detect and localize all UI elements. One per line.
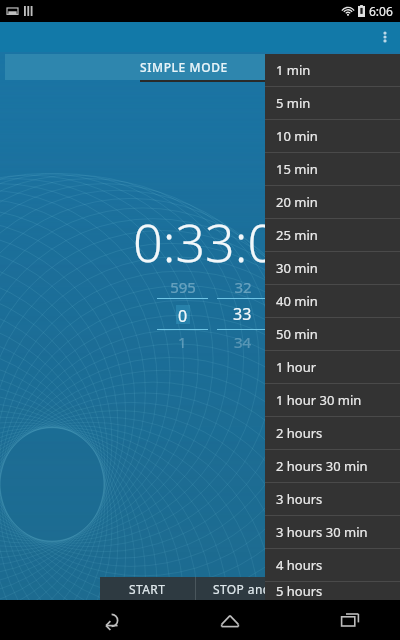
button[interactable]: Recent apps xyxy=(320,600,380,640)
button[interactable]: More options xyxy=(370,22,400,52)
staticText: 0:33:00 xyxy=(133,206,307,277)
button[interactable]: 2 hours 30 min xyxy=(265,450,400,482)
staticText: 1 xyxy=(178,332,187,352)
staticText: 32 xyxy=(234,277,252,297)
staticText: 1 min xyxy=(276,61,311,79)
button[interactable]: 20 min xyxy=(265,186,400,218)
staticText: 6:06 xyxy=(369,3,393,19)
staticText: STOP and R xyxy=(213,581,282,597)
staticText: 2 hours 30 min xyxy=(276,457,368,475)
button[interactable]: 5 hours xyxy=(265,582,400,600)
button[interactable]: SIMPLE MODE xyxy=(5,54,266,80)
button[interactable]: 5 min xyxy=(265,87,400,119)
button[interactable]: 25 min xyxy=(265,219,400,251)
staticText: 15 min xyxy=(276,160,318,178)
staticText: 5 hours xyxy=(276,582,323,600)
staticText: 10 min xyxy=(276,127,318,145)
button[interactable]: 50 min xyxy=(265,318,400,350)
button[interactable]: 40 min xyxy=(265,285,400,317)
staticText: 3 hours xyxy=(276,490,323,508)
staticText: 25 min xyxy=(276,226,318,244)
button[interactable]: 15 min xyxy=(265,153,400,185)
staticText: 20 min xyxy=(276,193,318,211)
staticText: 33 xyxy=(233,303,252,325)
button[interactable]: 1 hour xyxy=(265,351,400,383)
button[interactable]: 4 hours xyxy=(265,549,400,581)
button[interactable]: 10 min xyxy=(265,120,400,152)
button[interactable]: 1 hour 30 min xyxy=(265,384,400,416)
staticText: 0 xyxy=(178,305,188,324)
staticText: 1 hour 30 min xyxy=(276,391,362,409)
staticText: 40 min xyxy=(276,292,318,310)
staticText: START xyxy=(129,581,166,597)
staticText: 2 hours xyxy=(276,424,323,442)
button[interactable]: 2 hours xyxy=(265,417,400,449)
button[interactable]: 3 hours 30 min xyxy=(265,516,400,548)
staticText: SIMPLE MODE xyxy=(140,59,228,75)
staticText: 1 hour xyxy=(276,358,317,376)
button[interactable]: STOP and R xyxy=(196,577,346,600)
button[interactable]: 1 min xyxy=(265,54,400,86)
staticText: 5 min xyxy=(276,94,311,112)
staticText: 4 hours xyxy=(276,556,323,574)
button[interactable]: 3 hours xyxy=(265,483,400,515)
staticText: 595 xyxy=(170,277,196,297)
staticText: 3 hours 30 min xyxy=(276,523,368,541)
staticText: 50 min xyxy=(276,325,318,343)
button[interactable]: Home xyxy=(200,600,260,640)
staticText: 34 xyxy=(234,332,252,352)
button[interactable]: 595 xyxy=(155,276,210,354)
button[interactable]: START xyxy=(100,577,195,600)
button[interactable]: 30 min xyxy=(265,252,400,284)
button[interactable]: 32 xyxy=(215,276,270,354)
button[interactable]: Back xyxy=(80,600,140,640)
staticText: 30 min xyxy=(276,259,318,277)
